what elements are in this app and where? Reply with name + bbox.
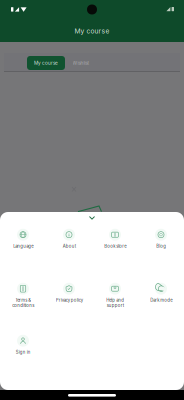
staticText: Help and support bbox=[106, 298, 124, 308]
button[interactable]: My course bbox=[27, 56, 65, 70]
button[interactable]: Collapse menu bbox=[85, 212, 99, 224]
button[interactable]: About bbox=[46, 229, 92, 255]
button[interactable]: Dark mode bbox=[138, 283, 184, 309]
staticText: Privacy policy bbox=[55, 298, 82, 303]
button[interactable]: Terms and conditions bbox=[0, 283, 46, 309]
staticText: Book store bbox=[104, 244, 126, 249]
staticText: Language bbox=[13, 244, 33, 249]
button[interactable]: Sign in bbox=[0, 335, 46, 361]
staticText: My course bbox=[74, 27, 109, 35]
button[interactable]: Help and support bbox=[92, 283, 138, 309]
button[interactable]: Book store bbox=[92, 229, 138, 255]
staticText: My course bbox=[34, 60, 58, 66]
staticText: Blog bbox=[156, 244, 166, 249]
button[interactable]: Blog bbox=[138, 229, 184, 255]
button[interactable]: Privacy policy bbox=[46, 283, 92, 309]
staticText: Terms & conditions bbox=[12, 298, 34, 308]
staticText: About bbox=[62, 244, 75, 249]
staticText: Dark mode bbox=[150, 298, 172, 303]
staticText: Wishlist bbox=[72, 60, 89, 66]
button[interactable]: Language bbox=[0, 229, 46, 255]
button[interactable]: Wishlist bbox=[67, 56, 95, 70]
staticText: Sign in bbox=[15, 350, 30, 355]
